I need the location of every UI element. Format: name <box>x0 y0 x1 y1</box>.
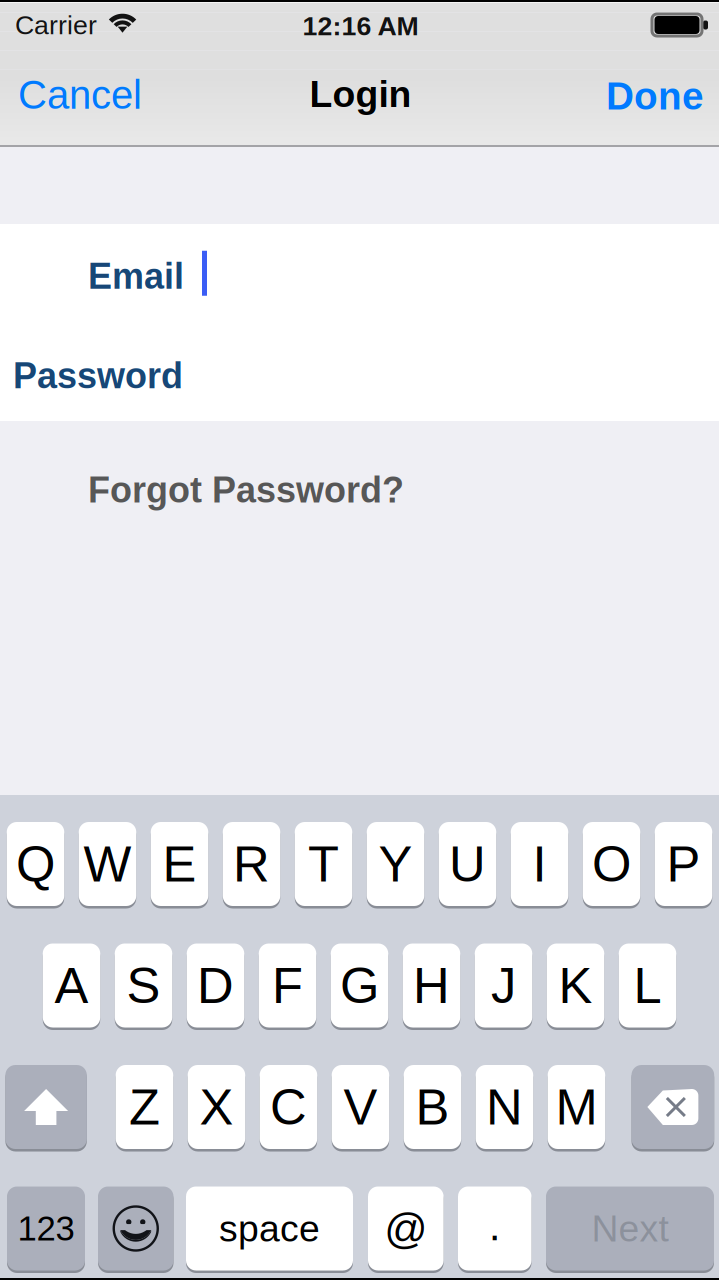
staticText: W <box>83 836 131 892</box>
staticText: D <box>197 957 234 1014</box>
staticText: Y <box>378 836 412 892</box>
staticText: Cancel <box>18 73 142 117</box>
staticText: F <box>272 957 303 1014</box>
button[interactable]: D <box>187 942 244 1029</box>
staticText: Forgot Password? <box>88 470 404 510</box>
staticText: Carrier <box>15 10 97 40</box>
button[interactable]: R <box>223 820 280 907</box>
staticText: 123 <box>17 1209 74 1248</box>
staticText: S <box>126 957 160 1014</box>
button[interactable]: Next <box>546 1185 714 1272</box>
button[interactable]: K <box>547 942 604 1029</box>
staticText: O <box>592 836 631 892</box>
button[interactable]: V <box>332 1063 389 1150</box>
button[interactable]: I <box>511 820 568 907</box>
staticText: 12:16 AM <box>302 11 418 41</box>
staticText: Z <box>129 1079 160 1135</box>
staticText: M <box>555 1079 597 1135</box>
button[interactable]: Password <box>0 322 719 421</box>
button[interactable]: . <box>458 1185 531 1272</box>
button[interactable]: P <box>655 820 712 907</box>
button[interactable]: T <box>295 820 352 907</box>
staticText: Password <box>13 356 183 396</box>
button[interactable]: S <box>115 942 172 1029</box>
button[interactable]: U <box>439 820 496 907</box>
staticText: X <box>199 1079 233 1135</box>
staticText: J <box>491 957 516 1014</box>
button[interactable]: W <box>79 820 136 907</box>
button[interactable]: J <box>475 942 532 1029</box>
button[interactable]: H <box>403 942 460 1029</box>
button[interactable]: Forgot Password? <box>0 464 719 508</box>
button[interactable]: 123 <box>7 1185 85 1272</box>
staticText: Login <box>309 73 411 115</box>
staticText: Q <box>16 836 55 892</box>
button[interactable]: Done <box>534 51 719 145</box>
button[interactable]: E <box>151 820 208 907</box>
staticText: Done <box>606 74 704 118</box>
button[interactable]: X <box>188 1063 245 1150</box>
staticText: Email <box>88 256 184 296</box>
button[interactable]: Delete <box>631 1063 714 1150</box>
button[interactable]: Y <box>367 820 424 907</box>
button[interactable]: O <box>583 820 640 907</box>
staticText: V <box>343 1079 377 1135</box>
staticText: R <box>233 836 270 892</box>
staticText: P <box>666 836 700 892</box>
staticText: A <box>54 957 88 1014</box>
staticText: @ <box>384 1205 427 1252</box>
button[interactable]: Shift <box>5 1063 87 1150</box>
staticText: L <box>633 957 661 1014</box>
staticText: B <box>415 1079 449 1135</box>
button[interactable]: L <box>619 942 676 1029</box>
button[interactable]: C <box>260 1063 317 1150</box>
staticText: . <box>489 1202 501 1249</box>
staticText: I <box>532 836 546 892</box>
staticText: C <box>270 1079 307 1135</box>
staticText: K <box>558 957 592 1014</box>
button[interactable]: @ <box>368 1185 444 1272</box>
button[interactable]: M <box>548 1063 605 1150</box>
staticText: G <box>340 957 379 1014</box>
button[interactable]: B <box>404 1063 461 1150</box>
staticText: N <box>486 1079 523 1135</box>
button[interactable]: Q <box>7 820 64 907</box>
staticText: Next <box>591 1208 668 1249</box>
button[interactable]: G <box>331 942 388 1029</box>
button[interactable]: Email <box>0 224 719 322</box>
button[interactable]: Cancel <box>0 51 188 145</box>
staticText: U <box>449 836 486 892</box>
staticText: space <box>219 1208 320 1249</box>
button[interactable]: F <box>259 942 316 1029</box>
button[interactable]: Emoji <box>98 1185 173 1272</box>
button[interactable]: space <box>186 1185 353 1272</box>
staticText: H <box>413 957 450 1014</box>
button[interactable]: N <box>476 1063 533 1150</box>
button[interactable]: Z <box>116 1063 173 1150</box>
button[interactable]: A <box>43 942 100 1029</box>
staticText: E <box>162 836 196 892</box>
staticText: T <box>308 836 339 892</box>
